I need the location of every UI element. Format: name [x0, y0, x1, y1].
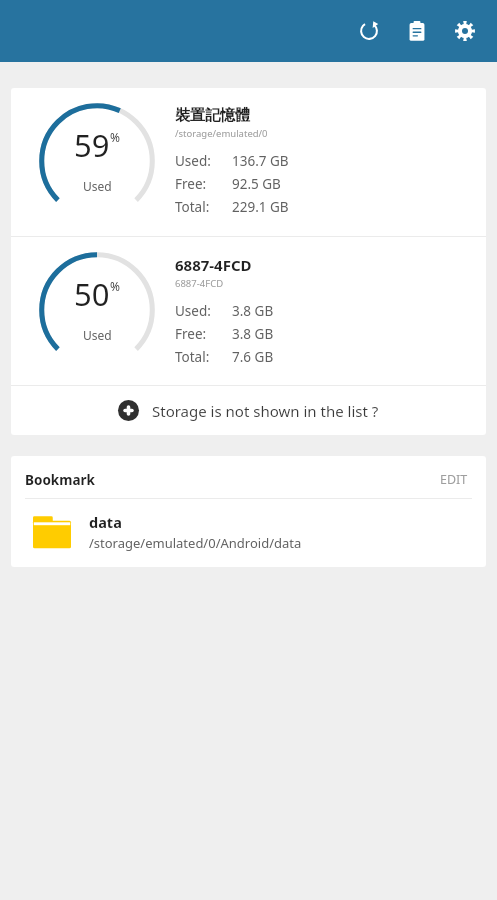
staticText: Used: [83, 327, 112, 343]
button[interactable]: Storage is not shown in the list ?: [11, 386, 486, 435]
button[interactable]: 50: [11, 237, 486, 385]
staticText: Bookmark: [25, 471, 436, 489]
button[interactable]: 59: [11, 88, 486, 236]
button[interactable]: Refresh: [345, 7, 393, 55]
staticText: EDIT: [440, 471, 468, 488]
staticText: 3.8 GB: [232, 302, 274, 320]
staticText: Storage is not shown in the list ?: [152, 401, 379, 421]
staticText: 92.5 GB: [232, 175, 281, 193]
staticText: 3.8 GB: [232, 325, 274, 343]
staticText: Free:: [175, 175, 207, 193]
staticText: 6887-4FCD: [175, 255, 252, 275]
staticText: Used: [83, 178, 112, 194]
staticText: /storage/emulated/0/Android/data: [89, 534, 302, 552]
staticText: Used:: [175, 152, 211, 170]
button[interactable]: Settings: [441, 7, 489, 55]
staticText: data: [89, 512, 122, 532]
staticText: 59: [74, 124, 110, 166]
staticText: %: [110, 129, 120, 145]
button[interactable]: Clipboard: [393, 7, 441, 55]
staticText: Used:: [175, 302, 211, 320]
staticText: 136.7 GB: [232, 152, 289, 170]
button[interactable]: EDIT: [436, 469, 472, 490]
staticText: Total:: [175, 198, 210, 216]
staticText: 50: [74, 273, 110, 315]
button[interactable]: data: [11, 499, 486, 567]
staticText: 6887-4FCD: [175, 277, 224, 290]
staticText: 7.6 GB: [232, 348, 274, 366]
staticText: %: [110, 278, 120, 294]
staticText: 229.1 GB: [232, 198, 289, 216]
staticText: Total:: [175, 348, 210, 366]
staticText: Free:: [175, 325, 207, 343]
staticText: 裝置記憶體: [175, 106, 250, 125]
staticText: /storage/emulated/0: [175, 127, 268, 140]
